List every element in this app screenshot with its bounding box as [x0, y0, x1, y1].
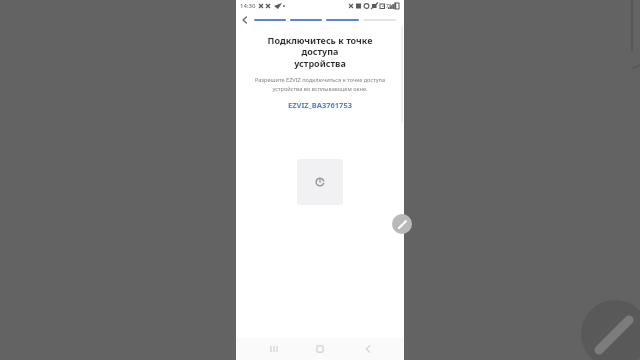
staticText: Подключитесь к точке доступа устройства	[250, 34, 390, 70]
staticText: 47%	[382, 2, 394, 10]
button[interactable]: EZVIZ_BA3761753	[288, 100, 352, 110]
staticText: Разрешите EZVIZ подключиться к точке дос…	[248, 76, 392, 93]
staticText: EZVIZ_BA3761753	[288, 100, 352, 110]
staticText: 14:30	[240, 2, 256, 10]
button[interactable]: Home	[309, 338, 331, 360]
button[interactable]: Edit	[392, 214, 412, 234]
button[interactable]: Back	[357, 338, 379, 360]
button[interactable]: Recent apps	[262, 338, 284, 360]
button[interactable]: Back	[236, 12, 254, 28]
